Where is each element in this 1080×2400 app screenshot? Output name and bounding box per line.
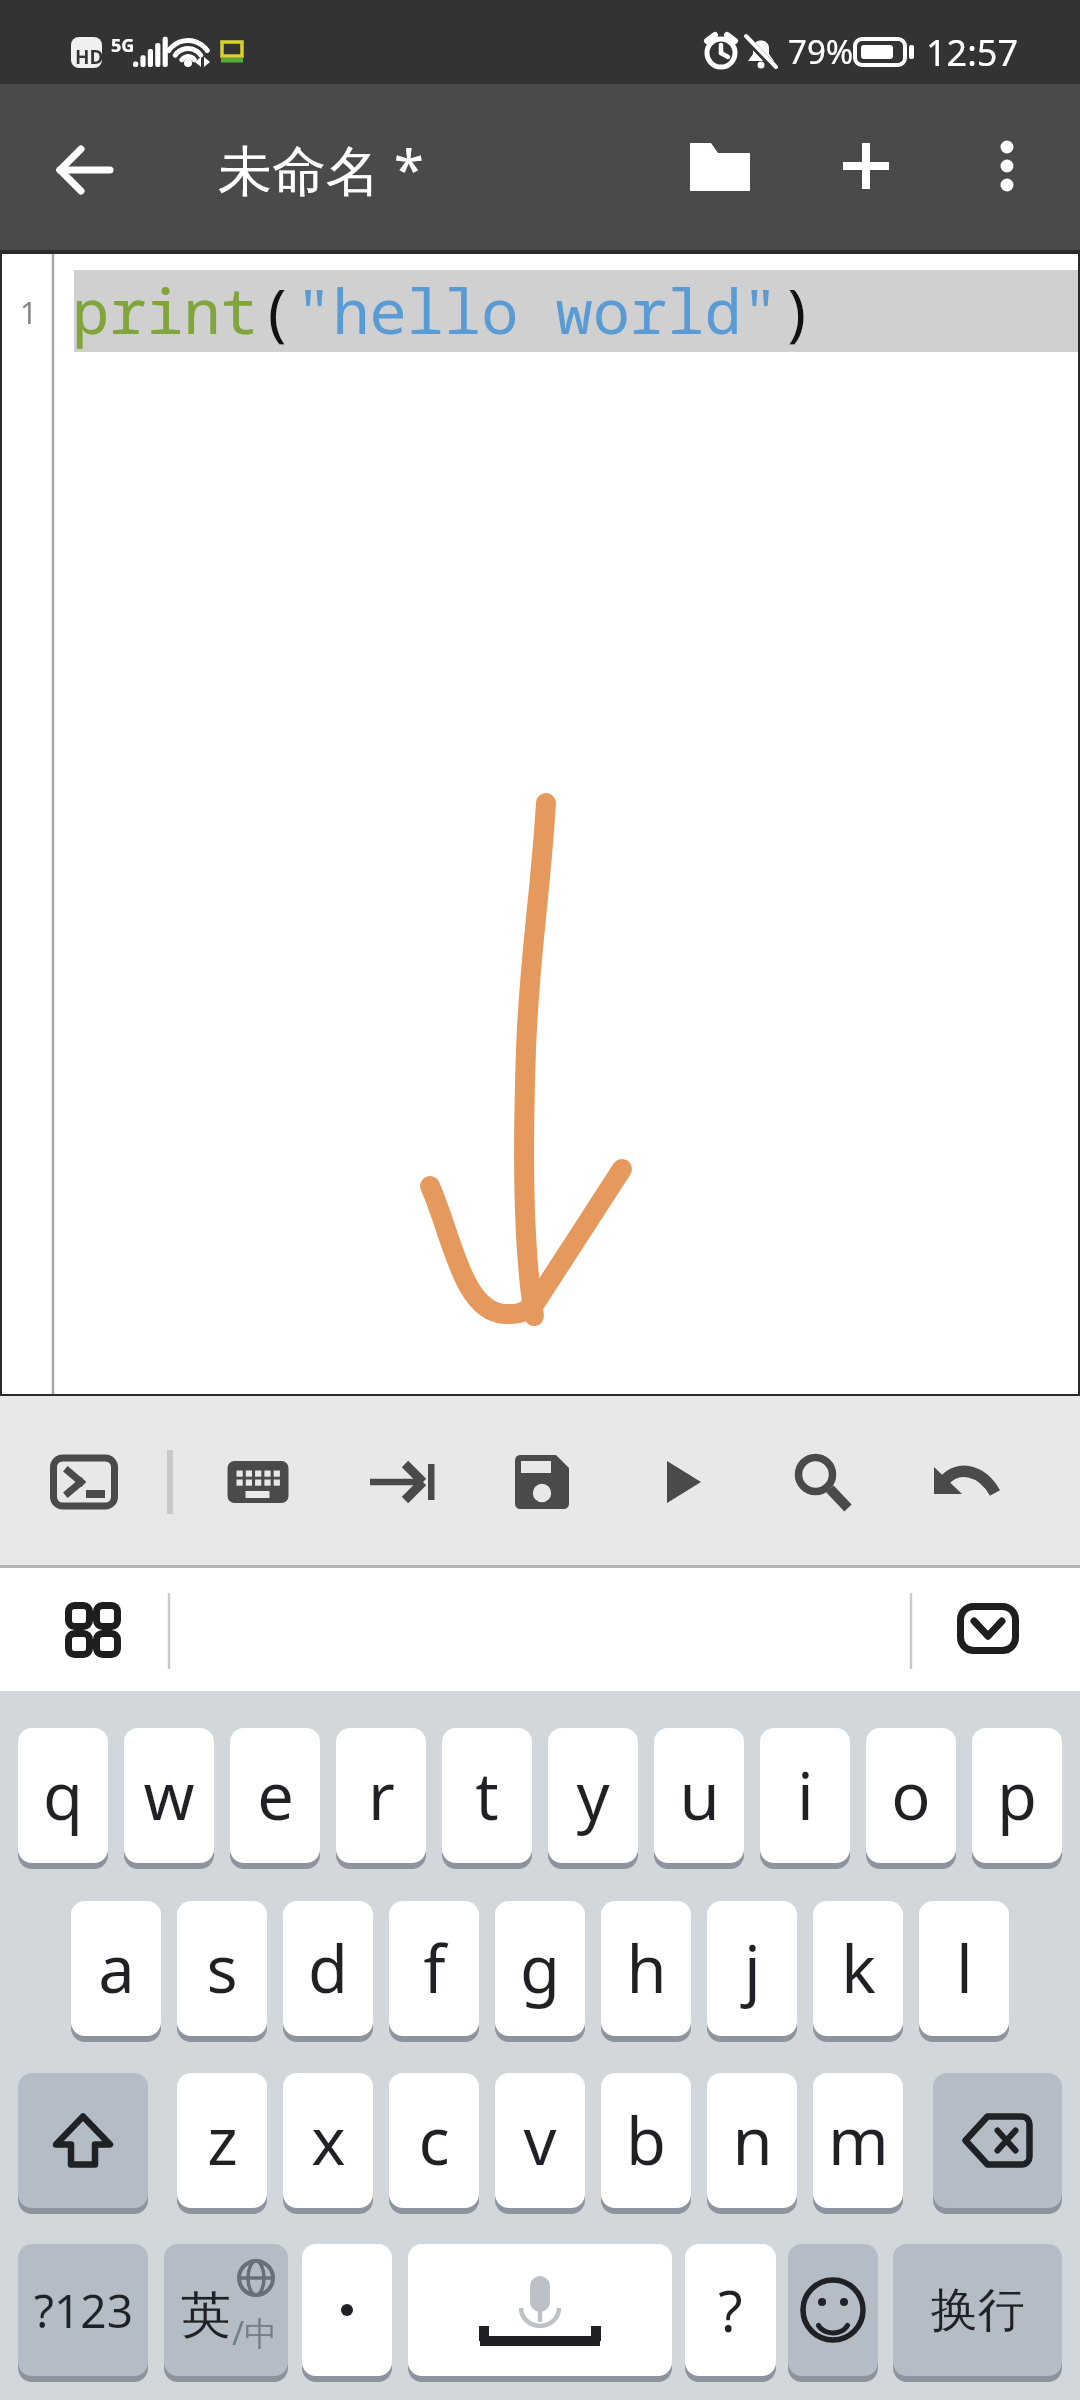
button[interactable]: v [495,2073,585,2214]
staticText: x [311,2096,346,2185]
button[interactable]: Emoji [788,2244,878,2382]
button[interactable]: Period [302,2244,392,2382]
button[interactable]: b [601,2073,691,2214]
button[interactable]: ? [685,2244,776,2382]
button[interactable]: Hide keyboard [938,1565,1038,1691]
button[interactable]: i [760,1728,850,1869]
button[interactable]: e [230,1728,320,1869]
staticText: 79% [788,29,854,74]
button[interactable]: Space [408,2244,672,2382]
button[interactable]: Keyboard [204,1396,312,1565]
staticText: o [891,1751,931,1840]
button[interactable]: u [654,1728,744,1869]
staticText: ? [718,2272,743,2348]
button[interactable]: z [177,2073,267,2214]
button[interactable]: More options [953,112,1061,220]
button[interactable]: Open folder [666,113,774,221]
staticText: t [475,1751,499,1840]
button[interactable]: o [866,1728,956,1869]
staticText: d [308,1924,348,2013]
staticText: k [841,1924,876,2013]
staticText: r [368,1751,395,1840]
button[interactable]: 换行 [893,2244,1062,2382]
staticText: p [997,1751,1037,1840]
staticText: g [520,1924,560,2013]
button[interactable]: k [813,1901,903,2042]
button[interactable]: Indent [348,1396,456,1565]
button[interactable]: m [813,2073,903,2214]
button[interactable]: Keyboard menu [40,1565,142,1691]
staticText: n [732,2096,773,2185]
staticText: i [797,1751,814,1840]
staticText: c [418,2096,450,2185]
staticText: print("hello world") [72,268,817,352]
button[interactable]: Language [164,2244,288,2382]
button[interactable]: Terminal [30,1396,138,1565]
button[interactable]: t [442,1728,532,1869]
button[interactable]: l [919,1901,1009,2042]
button[interactable]: ?123 [18,2244,148,2382]
button[interactable]: Back [31,116,139,224]
staticText: u [679,1751,720,1840]
staticText: v [523,2096,557,2185]
staticText: 英 [181,2284,231,2347]
staticText: /中 [232,2310,278,2355]
button[interactable]: q [18,1728,108,1869]
staticText: y [576,1751,610,1840]
staticText: 5G [111,33,135,58]
button[interactable]: Undo [909,1396,1017,1565]
button[interactable]: a [71,1901,161,2042]
button[interactable]: y [548,1728,638,1869]
staticText: l [956,1924,973,2013]
button[interactable]: New file [812,112,920,220]
button[interactable]: c [389,2073,479,2214]
button[interactable]: x [283,2073,373,2214]
button[interactable]: Shift [18,2073,148,2214]
button[interactable]: Search [768,1396,876,1565]
staticText: ?123 [34,2279,133,2342]
button[interactable]: j [707,1901,797,2042]
staticText: s [206,1924,238,2013]
staticText: q [43,1751,83,1840]
button[interactable]: s [177,1901,267,2042]
button[interactable]: h [601,1901,691,2042]
staticText: 12:57 [926,28,1019,77]
staticText: b [626,2096,666,2185]
staticText: 未命名 * [218,132,424,206]
button[interactable]: Run [630,1396,738,1565]
staticText: j [744,1924,761,2013]
button[interactable]: r [336,1728,426,1869]
staticText: a [98,1924,135,2013]
staticText: m [828,2096,889,2185]
staticText: f [423,1924,446,2013]
button[interactable]: f [389,1901,479,2042]
staticText: z [207,2096,238,2185]
button[interactable]: g [495,1901,585,2042]
button[interactable]: Backspace [933,2073,1062,2214]
button[interactable]: d [283,1901,373,2042]
staticText: 换行 [931,2281,1025,2340]
button[interactable]: n [707,2073,797,2214]
button[interactable]: p [972,1728,1062,1869]
staticText: h [626,1924,667,2013]
button[interactable]: w [124,1728,214,1869]
staticText: e [257,1751,294,1840]
button[interactable]: Save [488,1396,596,1565]
staticText: HD [75,44,104,70]
staticText: 1 [20,292,38,333]
staticText: w [143,1751,195,1840]
